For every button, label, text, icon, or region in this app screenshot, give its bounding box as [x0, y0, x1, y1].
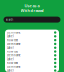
- staticText: Label: [7, 69, 14, 72]
- button[interactable]: Label: [5, 46, 59, 50]
- button[interactable]: Row text: [5, 38, 59, 42]
- staticText: Search: [5, 18, 13, 21]
- staticText: Label: [7, 46, 14, 49]
- staticText: Label: [7, 57, 14, 61]
- button[interactable]: Row text: [5, 50, 59, 53]
- button[interactable]: Search: [3, 17, 60, 23]
- staticText: Label: [7, 35, 14, 38]
- staticText: Item name: [7, 54, 21, 57]
- button[interactable]: Item name: [5, 42, 59, 46]
- button[interactable]: Label: [5, 34, 59, 38]
- button[interactable]: Label: [5, 69, 59, 72]
- button[interactable]: Item name: [5, 31, 59, 34]
- staticText: Use as a: [24, 3, 39, 8]
- staticText: Item name: [7, 65, 21, 68]
- staticText: Item name: [7, 42, 21, 46]
- staticText: Row text: [7, 38, 18, 42]
- button[interactable]: Label: [5, 57, 59, 61]
- staticText: Row text: [7, 50, 18, 53]
- button[interactable]: Item name: [5, 53, 59, 57]
- staticText: Withdrawal: [20, 8, 43, 13]
- staticText: Item name: [7, 31, 21, 34]
- button[interactable]: Item name: [5, 65, 59, 69]
- staticText: Row text: [7, 61, 18, 65]
- button[interactable]: Row text: [5, 61, 59, 65]
